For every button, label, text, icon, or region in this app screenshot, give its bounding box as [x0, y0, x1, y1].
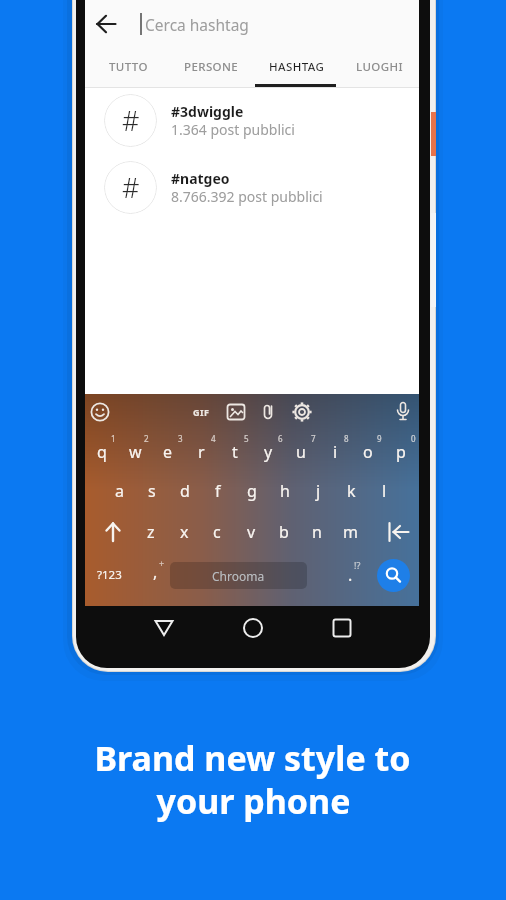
button[interactable]: d — [170, 476, 200, 506]
button[interactable]: PERSONE — [169, 55, 253, 79]
staticText: TUTTO — [109, 59, 148, 75]
staticText: n — [312, 521, 322, 543]
staticText: + — [159, 557, 165, 569]
button[interactable]: k — [336, 476, 366, 506]
staticText: #natgeo — [171, 169, 230, 188]
button[interactable]: c — [202, 517, 232, 547]
button[interactable] — [150, 614, 178, 642]
button[interactable]: s — [137, 476, 167, 506]
button[interactable]: o — [353, 437, 383, 467]
staticText: , — [153, 561, 158, 583]
staticText: x — [180, 521, 189, 543]
staticText: t — [232, 441, 238, 463]
staticText: 1.364 post pubblici — [171, 120, 295, 139]
staticText: u — [296, 441, 306, 463]
button[interactable]: # — [85, 94, 419, 161]
button[interactable]: GIF — [186, 404, 216, 420]
button[interactable]: h — [270, 476, 300, 506]
button[interactable] — [256, 400, 280, 424]
button[interactable]: j — [303, 476, 333, 506]
button[interactable]: v — [236, 517, 266, 547]
button[interactable] — [383, 517, 413, 547]
staticText: your phone — [156, 778, 351, 824]
button[interactable] — [90, 8, 122, 40]
button[interactable]: b — [269, 517, 299, 547]
button[interactable]: e — [153, 437, 183, 467]
staticText: a — [115, 480, 124, 502]
staticText: GIF — [193, 406, 210, 418]
button[interactable]: r — [186, 437, 216, 467]
staticText: PERSONE — [184, 59, 239, 75]
staticText: f — [215, 480, 221, 502]
button[interactable]: HASHTAG — [255, 55, 339, 79]
staticText: # — [122, 102, 140, 139]
staticText: z — [147, 521, 155, 543]
button[interactable] — [391, 399, 415, 423]
button[interactable]: , — [145, 560, 165, 584]
button[interactable] — [88, 400, 112, 424]
button[interactable]: # — [85, 161, 419, 228]
button[interactable] — [290, 400, 314, 424]
staticText: 2 — [144, 433, 149, 444]
button[interactable]: m — [335, 517, 365, 547]
button[interactable]: t — [220, 437, 250, 467]
staticText: 6 — [278, 433, 283, 444]
button[interactable]: f — [203, 476, 233, 506]
button[interactable]: TUTTO — [88, 55, 168, 79]
staticText: Brand new style to — [94, 735, 411, 781]
staticText: p — [396, 441, 406, 463]
staticText: LUOGHI — [356, 59, 403, 75]
button[interactable]: y — [253, 437, 283, 467]
staticText: Cerca hashtag — [145, 14, 249, 35]
button[interactable] — [328, 614, 356, 642]
button[interactable]: g — [237, 476, 267, 506]
staticText: #3dwiggle — [171, 102, 244, 121]
staticText: Chrooma — [212, 568, 265, 584]
button[interactable] — [98, 517, 128, 547]
button[interactable]: l — [369, 476, 399, 506]
staticText: j — [316, 480, 321, 502]
button[interactable]: LUOGHI — [339, 55, 419, 79]
staticText: # — [122, 169, 140, 206]
button[interactable]: q — [87, 437, 117, 467]
staticText: q — [97, 441, 107, 463]
staticText: 7 — [311, 433, 316, 444]
button[interactable]: u — [286, 437, 316, 467]
staticText: HASHTAG — [269, 59, 325, 75]
button[interactable] — [224, 400, 248, 424]
button[interactable]: Chrooma — [170, 562, 307, 589]
staticText: 5 — [244, 433, 249, 444]
staticText: . — [348, 564, 353, 586]
staticText: 4 — [211, 433, 216, 444]
button[interactable]: z — [136, 517, 166, 547]
button[interactable]: n — [302, 517, 332, 547]
staticText: c — [213, 521, 221, 543]
button[interactable]: . — [342, 563, 358, 587]
button[interactable] — [377, 559, 410, 592]
staticText: 0 — [411, 433, 416, 444]
staticText: d — [180, 480, 190, 502]
staticText: s — [148, 480, 156, 502]
button[interactable] — [239, 614, 267, 642]
staticText: !? — [354, 559, 361, 571]
staticText: w — [129, 441, 142, 463]
button[interactable]: ?123 — [86, 563, 132, 587]
staticText: l — [382, 480, 387, 502]
staticText: ?123 — [97, 567, 122, 583]
button[interactable]: i — [320, 437, 350, 467]
staticText: o — [363, 441, 373, 463]
staticText: 3 — [178, 433, 183, 444]
staticText: e — [163, 441, 173, 463]
staticText: g — [247, 480, 257, 502]
staticText: 1 — [111, 433, 116, 444]
button[interactable]: x — [169, 517, 199, 547]
staticText: 8.766.392 post pubblici — [171, 187, 323, 206]
staticText: k — [347, 480, 356, 502]
staticText: b — [279, 521, 289, 543]
button[interactable]: w — [120, 437, 150, 467]
staticText: h — [280, 480, 290, 502]
staticText: v — [247, 521, 256, 543]
button[interactable]: p — [386, 437, 416, 467]
staticText: r — [198, 441, 205, 463]
button[interactable]: a — [104, 476, 134, 506]
